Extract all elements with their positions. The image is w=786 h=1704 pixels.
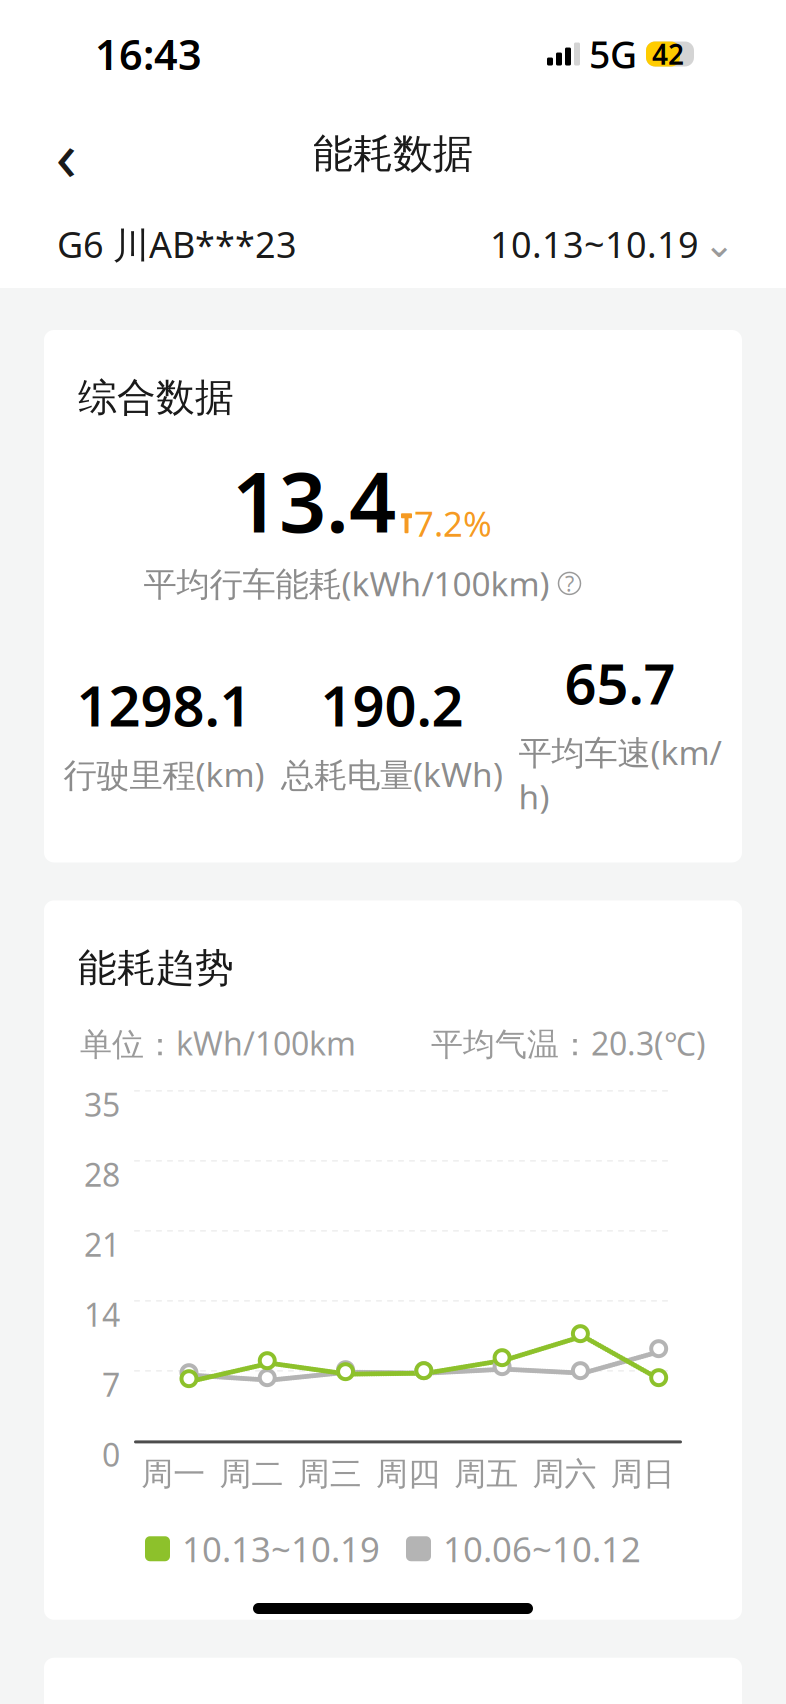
staticText: 7 (102, 1363, 120, 1406)
staticText: 单位：kWh/100km (80, 1022, 356, 1064)
staticText: 行驶里程(km) (63, 752, 264, 796)
staticText: 10.06~10.12 (443, 1526, 641, 1572)
staticText: 13.4 (232, 445, 396, 555)
staticText: 能耗数据 (313, 129, 473, 178)
button[interactable]: Back (36, 124, 96, 184)
staticText: 周一 (141, 1454, 205, 1494)
staticText: 1298.1 (76, 668, 251, 742)
staticText: 总耗电量(kWh) (281, 752, 503, 796)
staticText: 16:43 (95, 27, 202, 81)
staticText: 190.2 (320, 668, 463, 742)
button[interactable]: 平均行车能耗说明 (558, 572, 580, 594)
staticText: ‹ (55, 108, 76, 200)
staticText: 10.13~10.19 (182, 1526, 380, 1572)
staticText: 平均车速(km/h) (518, 730, 721, 818)
button[interactable]: 10.13~10.19 (490, 212, 729, 276)
staticText: 平均行车能耗(kWh/100km) (143, 561, 549, 606)
staticText: 周六 (533, 1454, 597, 1494)
staticText: 综合数据 (78, 374, 234, 421)
staticText: 周三 (298, 1454, 362, 1494)
staticText: 周五 (454, 1454, 518, 1494)
staticText: 14 (84, 1293, 120, 1336)
staticText: 5G (589, 29, 637, 79)
staticText: 7.2% (414, 500, 492, 546)
staticText: 0 (102, 1433, 120, 1476)
staticText: ⌄ (703, 223, 734, 265)
staticText: G6 川AB***23 (57, 220, 297, 268)
staticText: 周四 (376, 1454, 440, 1494)
staticText: 21 (84, 1223, 120, 1266)
staticText: ? (565, 569, 574, 597)
staticText: 10.13~10.19 (490, 220, 699, 268)
staticText: 平均气温：20.3(℃) (431, 1022, 706, 1064)
staticText: 28 (84, 1153, 120, 1196)
staticText: 周日 (611, 1454, 675, 1494)
staticText: 65.7 (564, 645, 675, 720)
staticText: 周二 (219, 1454, 283, 1494)
staticText: 42 (652, 35, 684, 73)
staticText: 35 (84, 1083, 120, 1126)
staticText: 能耗趋势 (78, 944, 234, 992)
